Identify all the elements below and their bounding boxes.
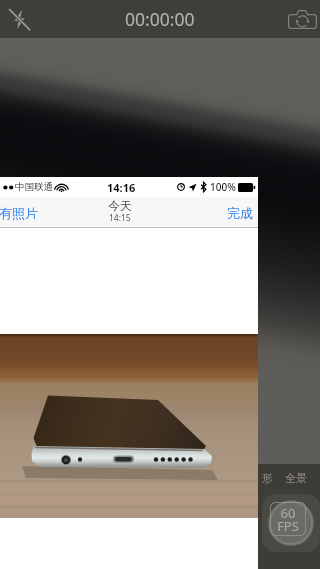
staticText: 60 FPS xyxy=(277,504,299,535)
staticText: 中国联通 xyxy=(15,181,53,193)
button[interactable]: Switch camera xyxy=(285,2,319,36)
staticText: 100% xyxy=(210,180,236,194)
staticText: 今天 xyxy=(108,198,132,213)
staticText: 00:00:00 xyxy=(125,7,195,31)
staticText: 形 xyxy=(262,471,273,485)
staticText: 完成 xyxy=(227,205,253,221)
button[interactable]: Flash off xyxy=(5,5,33,33)
staticText: 有照片 xyxy=(0,205,38,221)
staticText: 全景 xyxy=(285,471,307,485)
button[interactable]: 60 FPS xyxy=(270,502,306,536)
staticText: 14:15 xyxy=(109,212,131,224)
staticText: 14:16 xyxy=(107,180,136,195)
